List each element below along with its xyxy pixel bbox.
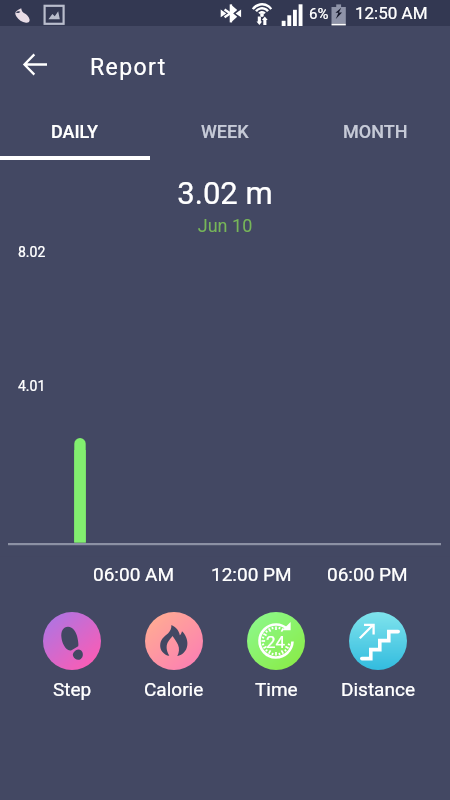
staticText: Calorie [144, 678, 204, 700]
staticText: Time [255, 678, 298, 700]
button[interactable]: Calorie [123, 612, 225, 700]
staticText: 12:00 PM [211, 563, 292, 585]
staticText: Report [90, 54, 167, 81]
staticText: 06:00 AM [93, 563, 175, 585]
staticText: 06:00 PM [327, 563, 408, 585]
staticText: 24 [266, 632, 286, 652]
button[interactable]: Step [21, 612, 123, 700]
staticText: MONTH [343, 121, 408, 142]
staticText: 4.01 [18, 378, 46, 394]
button[interactable]: 24 [225, 612, 327, 700]
staticText: DAILY [51, 121, 99, 142]
staticText: Jun 10 [0, 215, 450, 236]
staticText: 8.02 [18, 244, 46, 260]
staticText: 12:50 AM [355, 3, 428, 23]
staticText: 3.02 m [0, 175, 450, 211]
staticText: Step [53, 678, 92, 700]
staticText: WEEK [201, 121, 249, 142]
button[interactable]: MONTH [300, 100, 450, 163]
button[interactable]: Back [11, 40, 59, 88]
staticText: Distance [341, 678, 415, 700]
button[interactable]: WEEK [150, 100, 300, 163]
button[interactable]: Distance [327, 612, 429, 700]
staticText: 6% [309, 5, 329, 23]
button[interactable]: DAILY [0, 100, 150, 163]
